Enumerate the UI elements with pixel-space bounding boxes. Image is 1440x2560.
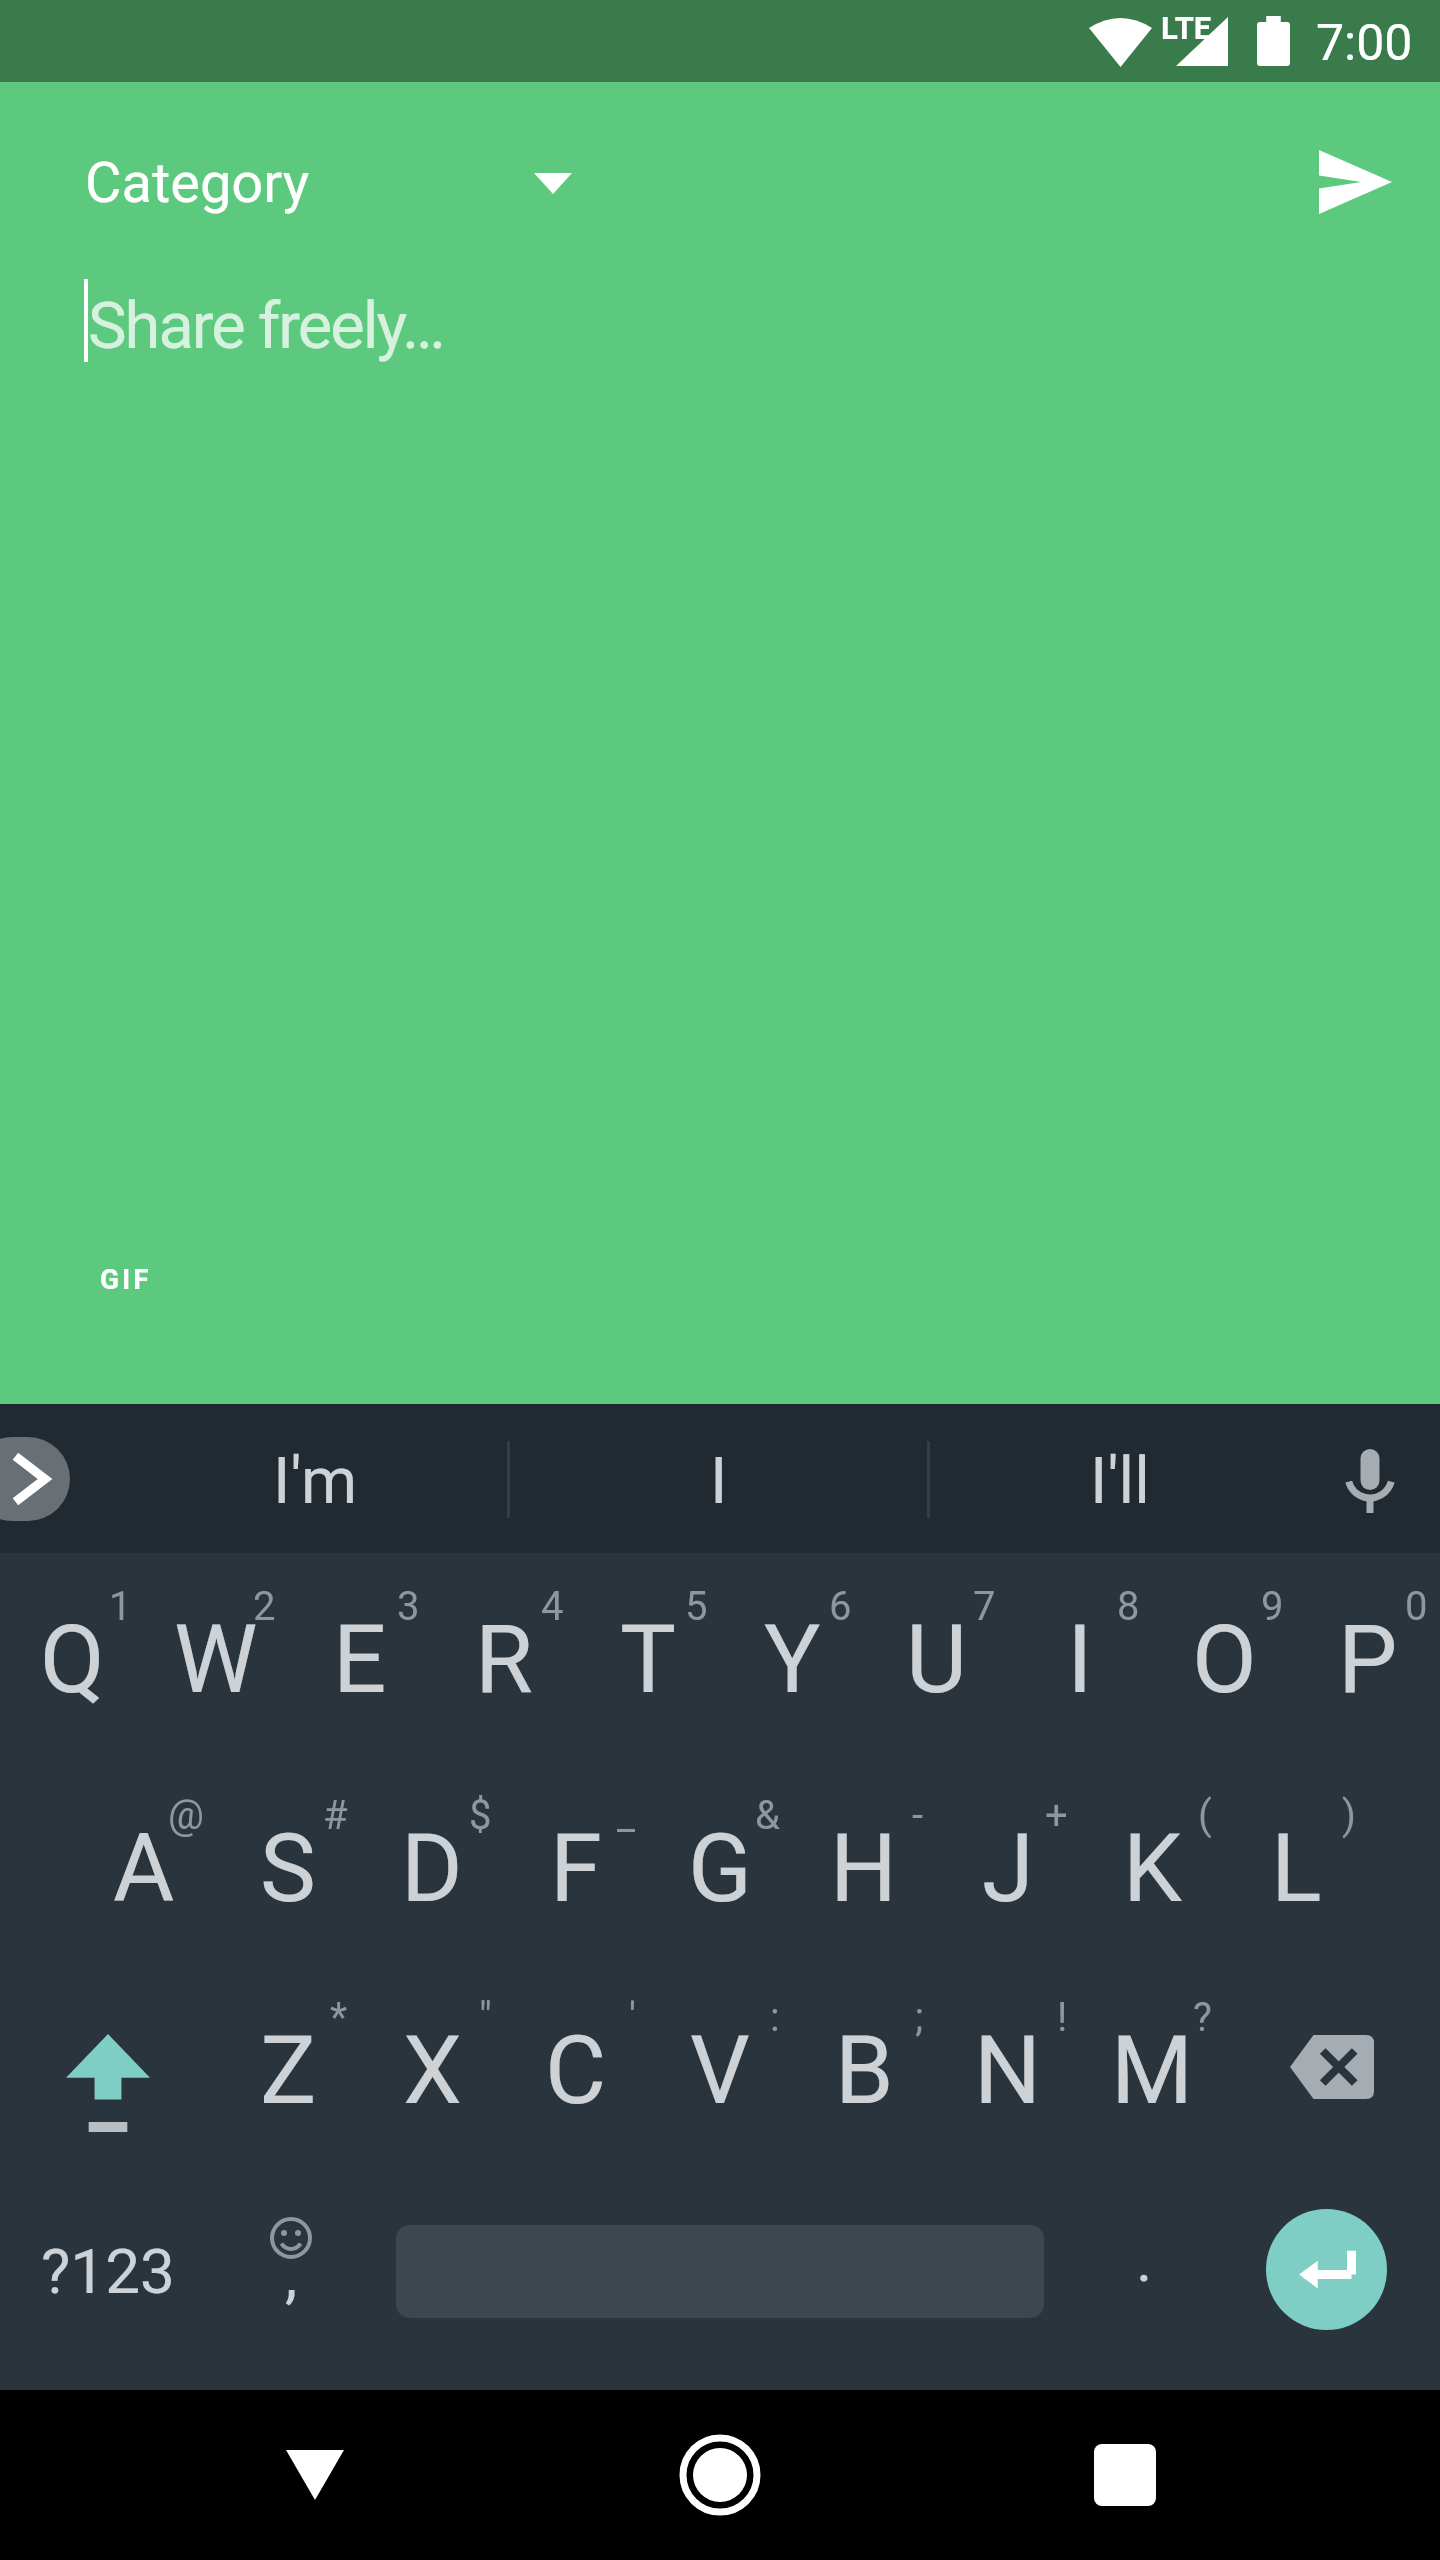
- button[interactable]: Y: [720, 1553, 864, 1762]
- staticText: Category: [85, 150, 310, 216]
- button[interactable]: [0, 1437, 70, 1521]
- staticText: ,: [285, 2239, 298, 2312]
- button[interactable]: [1290, 119, 1420, 244]
- button[interactable]: W: [144, 1553, 288, 1762]
- staticText: ;: [915, 1994, 924, 2041]
- button[interactable]: B: [792, 1971, 936, 2180]
- staticText: 8: [1117, 1583, 1140, 1630]
- button[interactable]: [1040, 2390, 1210, 2560]
- button[interactable]: X: [360, 1971, 504, 2180]
- staticText: L: [1271, 1814, 1322, 1924]
- staticText: &: [755, 1792, 780, 1839]
- staticText: 5: [685, 1583, 708, 1630]
- staticText: O: [1192, 1605, 1257, 1715]
- button[interactable]: P: [1296, 1553, 1440, 1762]
- button[interactable]: T: [576, 1553, 720, 1762]
- staticText: Q: [40, 1605, 105, 1715]
- staticText: Z: [260, 2016, 317, 2126]
- staticText: #: [323, 1792, 348, 1839]
- staticText: 9: [1261, 1583, 1284, 1630]
- staticText: T: [620, 1605, 677, 1715]
- staticText: I'll: [1090, 1444, 1150, 1519]
- staticText: R: [475, 1605, 533, 1715]
- staticText: +: [1045, 1792, 1068, 1839]
- button[interactable]: A: [72, 1762, 216, 1971]
- button[interactable]: I: [1008, 1553, 1152, 1762]
- button[interactable]: GIF: [100, 1263, 152, 1296]
- button[interactable]: J: [936, 1762, 1080, 1971]
- staticText: G: [688, 1814, 753, 1924]
- staticText: I: [1067, 1605, 1093, 1715]
- button[interactable]: Category: [85, 118, 572, 248]
- button[interactable]: [1224, 1971, 1440, 2180]
- staticText: @: [168, 1792, 204, 1839]
- staticText: ?123: [41, 2235, 175, 2308]
- staticText: B: [835, 2016, 894, 2126]
- staticText: V: [690, 2016, 750, 2126]
- staticText: Y: [764, 1605, 821, 1715]
- button[interactable]: [230, 2390, 400, 2560]
- button[interactable]: R: [432, 1553, 576, 1762]
- button[interactable]: .: [1044, 2180, 1224, 2390]
- button[interactable]: [396, 2180, 1044, 2390]
- staticText: E: [333, 1605, 387, 1715]
- staticText: J: [982, 1814, 1034, 1924]
- button[interactable]: Z: [216, 1971, 360, 2180]
- button[interactable]: ,: [216, 2180, 396, 2390]
- button[interactable]: G: [648, 1762, 792, 1971]
- button[interactable]: F: [504, 1762, 648, 1971]
- staticText: .: [1136, 2223, 1153, 2296]
- button[interactable]: [0, 1971, 216, 2180]
- staticText: K: [1123, 1814, 1182, 1924]
- button[interactable]: E: [288, 1553, 432, 1762]
- button[interactable]: L: [1224, 1762, 1368, 1971]
- button[interactable]: U: [864, 1553, 1008, 1762]
- button[interactable]: ?123: [0, 2180, 216, 2390]
- staticText: 2: [253, 1583, 276, 1630]
- staticText: !: [1057, 1994, 1068, 2041]
- button[interactable]: V: [648, 1971, 792, 2180]
- staticText: H: [830, 1814, 898, 1924]
- button[interactable]: N: [936, 1971, 1080, 2180]
- staticText: W: [174, 1605, 258, 1715]
- staticText: Share freely…: [88, 288, 444, 364]
- button[interactable]: C: [504, 1971, 648, 2180]
- staticText: _: [617, 1792, 636, 1839]
- staticText: 4: [541, 1583, 564, 1630]
- staticText: 1: [109, 1583, 132, 1630]
- staticText: X: [403, 2016, 462, 2126]
- button[interactable]: I'll: [930, 1404, 1310, 1553]
- staticText: U: [906, 1605, 967, 1715]
- staticText: 7:00: [1316, 14, 1413, 73]
- staticText: D: [401, 1814, 463, 1924]
- staticText: F: [550, 1814, 602, 1924]
- staticText: -: [912, 1792, 924, 1839]
- button[interactable]: O: [1152, 1553, 1296, 1762]
- staticText: M: [1111, 2016, 1194, 2126]
- button[interactable]: M: [1080, 1971, 1224, 2180]
- staticText: 7: [973, 1583, 996, 1630]
- button[interactable]: K: [1080, 1762, 1224, 1971]
- staticText: A: [113, 1814, 175, 1924]
- button[interactable]: [1266, 2209, 1387, 2330]
- staticText: C: [545, 2016, 607, 2126]
- staticText: I: [710, 1444, 728, 1519]
- staticText: 6: [829, 1583, 852, 1630]
- staticText: $: [469, 1792, 492, 1839]
- button[interactable]: S: [216, 1762, 360, 1971]
- staticText: ': [629, 1994, 636, 2041]
- button[interactable]: I: [510, 1404, 927, 1553]
- staticText: ): [1342, 1792, 1356, 1839]
- button[interactable]: D: [360, 1762, 504, 1971]
- staticText: 3: [397, 1583, 420, 1630]
- staticText: (: [1198, 1792, 1212, 1839]
- staticText: N: [974, 2016, 1042, 2126]
- staticText: I'm: [273, 1444, 358, 1519]
- button[interactable]: H: [792, 1762, 936, 1971]
- button[interactable]: [1330, 1441, 1410, 1521]
- button[interactable]: Q: [0, 1553, 144, 1762]
- staticText: S: [260, 1814, 316, 1924]
- staticText: LTE: [1161, 10, 1212, 46]
- button[interactable]: I'm: [115, 1404, 515, 1553]
- button[interactable]: [635, 2390, 805, 2560]
